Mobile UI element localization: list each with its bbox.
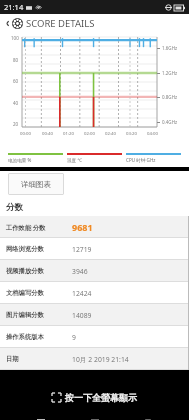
button[interactable]: 网络浏览分数	[0, 238, 189, 260]
staticText: 9	[72, 333, 76, 342]
staticText: SCORE DETAILS	[26, 17, 95, 30]
staticText: 0.4GHz	[162, 119, 178, 125]
staticText: 网络浏览分数	[6, 245, 44, 253]
other: Fullscreen	[52, 393, 61, 402]
staticText: 3946	[72, 267, 88, 276]
staticText: 14089	[72, 311, 92, 320]
staticText: 20	[13, 121, 19, 127]
staticText: 100	[11, 35, 19, 41]
button[interactable]: 文档编写分数	[0, 282, 189, 304]
staticText: 01:20	[63, 130, 74, 136]
staticText: 12719	[72, 245, 92, 254]
staticText: 04:00	[147, 130, 158, 136]
staticText: 10月 2 2019 21:14	[72, 355, 129, 364]
staticText: 12424	[72, 289, 92, 298]
button[interactable]: 视频播放分数	[0, 260, 189, 282]
staticText: 60	[13, 78, 19, 84]
staticText: 温度 ℃	[67, 157, 82, 163]
staticText: 1.6GHz	[162, 45, 178, 51]
staticText: 1.2GHz	[162, 70, 178, 76]
button[interactable]: Back	[0, 14, 189, 33]
button[interactable]: 工作效能 分数	[0, 216, 189, 238]
staticText: 40	[13, 100, 19, 106]
staticText: 电池电量 %	[8, 157, 32, 163]
other: Back	[3, 19, 12, 28]
staticText: 工作效能 分数	[6, 223, 46, 232]
staticText: 00:40	[42, 130, 53, 136]
staticText: 02:40	[105, 130, 116, 136]
staticText: 02:00	[84, 130, 95, 136]
staticText: 按一下全螢幕顯示	[65, 392, 137, 403]
staticText: 21:14	[4, 2, 24, 12]
button[interactable]: 日期	[0, 348, 189, 370]
button[interactable]: 操作系统版本	[0, 326, 189, 348]
staticText: 日期	[6, 355, 19, 363]
staticText: 9681	[72, 221, 93, 233]
staticText: 图片编辑分数	[6, 311, 44, 319]
staticText: 操作系统版本	[6, 333, 44, 341]
staticText: 0.8GHz	[162, 94, 178, 100]
staticText: 03:20	[126, 130, 137, 136]
staticText: 视频播放分数	[6, 267, 44, 275]
button[interactable]: Fullscreen	[0, 392, 189, 403]
staticText: 分数	[6, 202, 23, 213]
staticText: CPU 时钟 GHz	[126, 157, 156, 163]
staticText: 文档编写分数	[6, 289, 44, 297]
button[interactable]: 图片编辑分数	[0, 304, 189, 326]
staticText: 00:00	[20, 130, 31, 136]
button[interactable]: 详细图表	[8, 173, 64, 195]
staticText: 详细图表	[21, 180, 51, 189]
staticText: 80	[13, 57, 19, 63]
